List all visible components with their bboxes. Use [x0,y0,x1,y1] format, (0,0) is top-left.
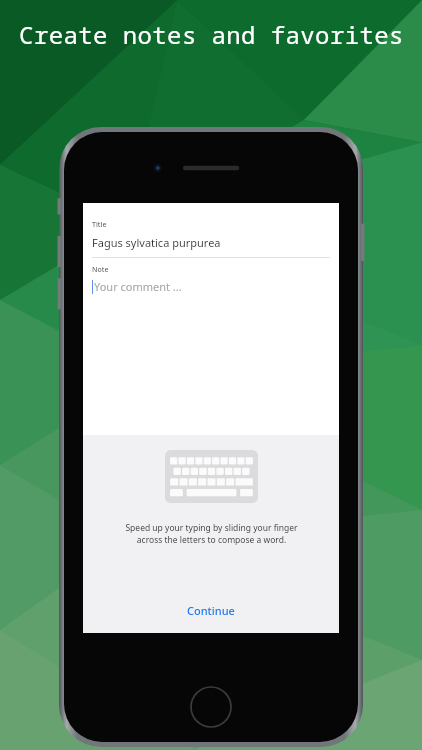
staticText: Continue [187,603,235,618]
other: Keyboard [165,450,258,503]
button[interactable]: Your comment ... [92,279,330,294]
staticText: Speed up your typing by sliding your fin… [125,522,298,546]
button[interactable]: Continue [83,591,339,629]
staticText: Create notes and favorites [19,18,404,51]
staticText: Note [92,265,109,275]
button[interactable]: Fagus sylvatica purpurea [92,235,330,250]
staticText: Title [92,220,107,230]
staticText: Fagus sylvatica purpurea [92,235,221,250]
staticText: Your comment ... [94,279,182,294]
